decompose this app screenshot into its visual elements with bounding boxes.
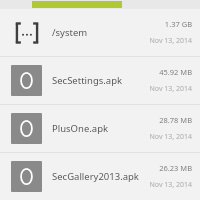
staticText: PlusOne.apk [52,122,109,135]
other: APK file [11,113,42,144]
staticText: Nov 13, 2014 [149,180,192,190]
other: Folder [11,17,42,48]
staticText: Nov 13, 2014 [149,36,192,46]
staticText: 45.92 MB [159,67,192,77]
staticText: SecGallery2013.apk [52,170,139,183]
staticText: Nov 13, 2014 [149,84,192,94]
button[interactable]: APK file [0,153,200,200]
staticText: /system [52,26,88,39]
other: APK file [11,65,42,96]
other: APK file [11,161,42,192]
staticText: 26.23 MB [159,163,192,173]
staticText: Nov 13, 2014 [149,132,192,142]
button[interactable]: Folder [0,9,200,56]
staticText: 1.37 GB [164,19,192,29]
staticText: SecSettings.apk [52,74,123,87]
staticText: 28.78 MB [159,115,192,125]
button[interactable]: APK file [0,105,200,152]
button[interactable]: APK file [0,57,200,104]
